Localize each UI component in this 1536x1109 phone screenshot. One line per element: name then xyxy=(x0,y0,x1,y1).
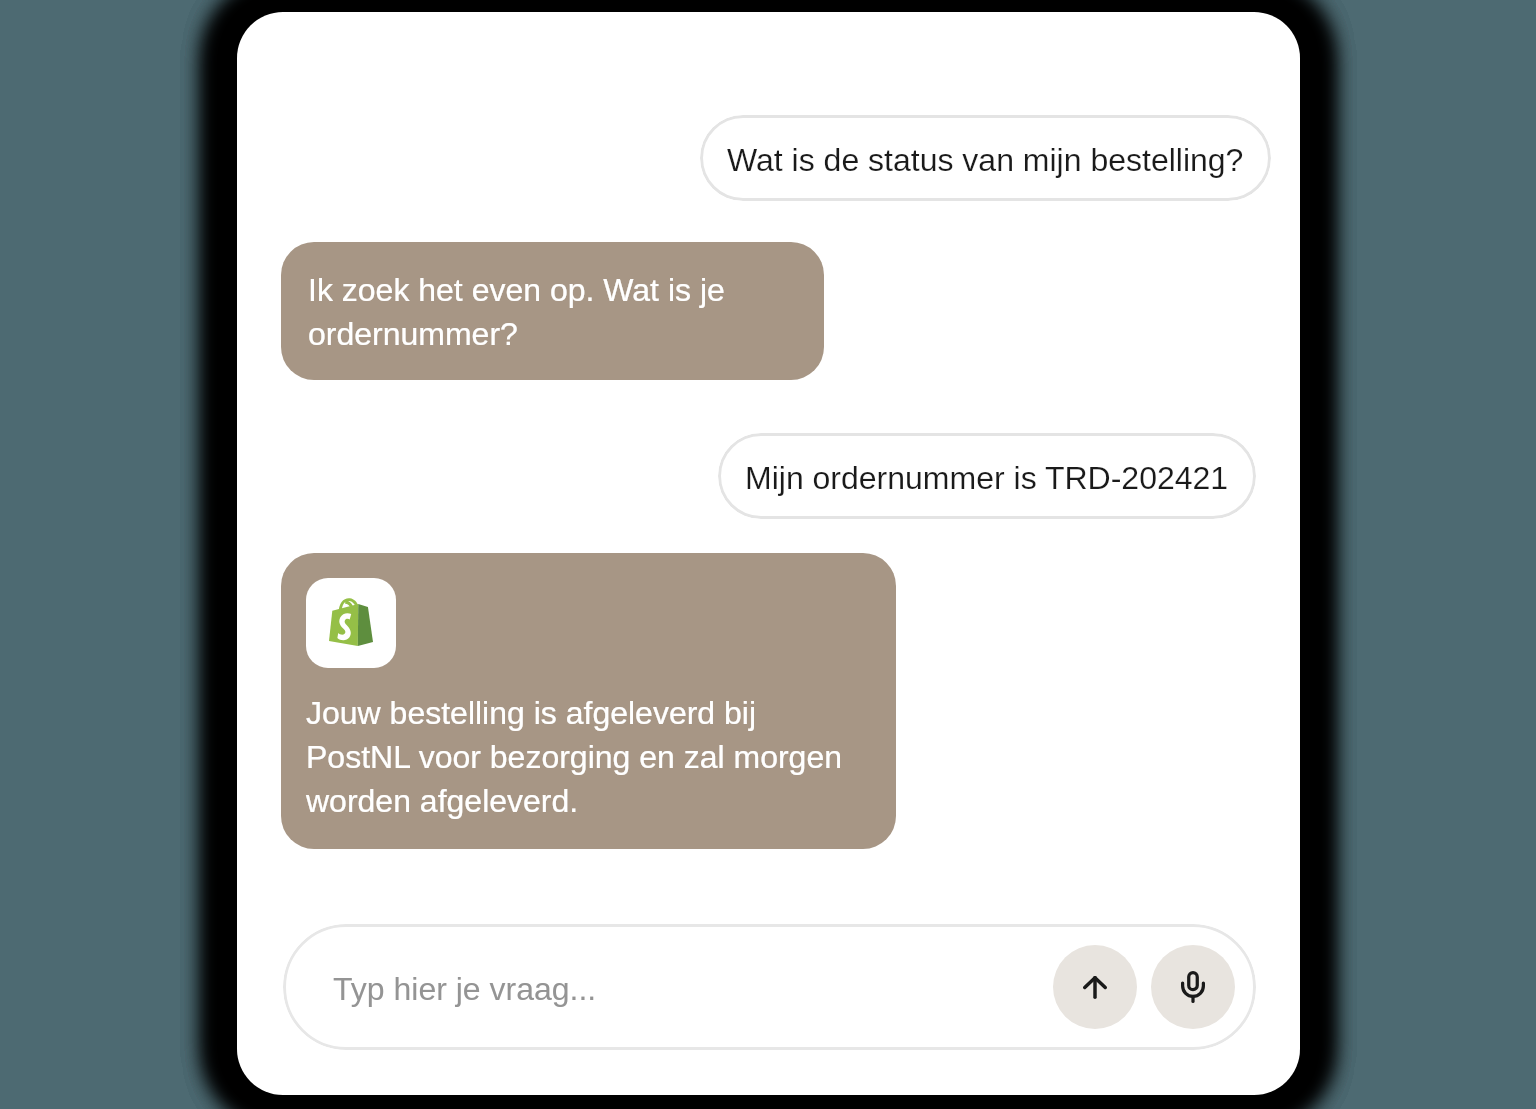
button[interactable]: Mijn ordernummer is TRD-202421 xyxy=(718,433,1256,519)
button[interactable]: Voice input xyxy=(1151,945,1235,1029)
button[interactable]: Typ hier je vraag... xyxy=(283,924,1256,1050)
staticText: Typ hier je vraag... xyxy=(333,965,597,1009)
button[interactable]: Send message xyxy=(1053,945,1137,1029)
button[interactable]: Jouw bestelling is afgeleverd bij PostNL… xyxy=(281,553,896,849)
button[interactable]: Ik zoek het even op. Wat is je ordernumm… xyxy=(281,242,824,380)
staticText: Wat is de status van mijn bestelling? xyxy=(727,136,1244,180)
staticText: Ik zoek het even op. Wat is je ordernumm… xyxy=(308,266,797,354)
button[interactable]: Wat is de status van mijn bestelling? xyxy=(700,115,1271,201)
staticText: Mijn ordernummer is TRD-202421 xyxy=(745,454,1229,498)
staticText: Jouw bestelling is afgeleverd bij PostNL… xyxy=(306,689,856,821)
